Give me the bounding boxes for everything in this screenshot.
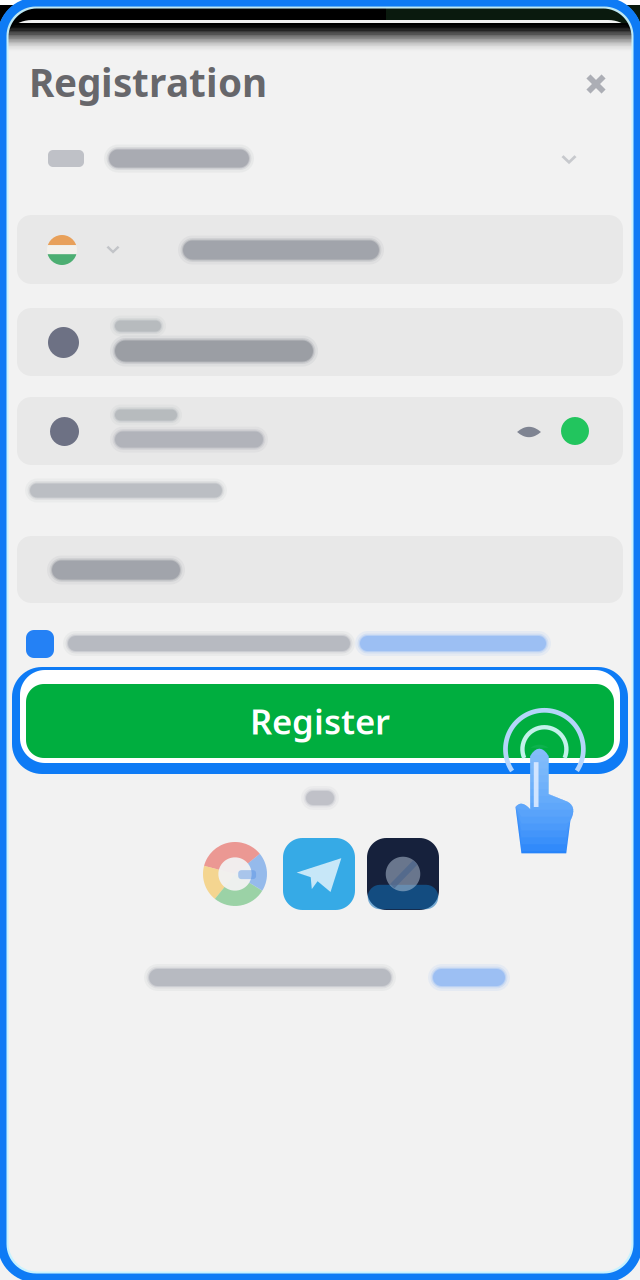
button[interactable]	[0, 0, 640, 1280]
button[interactable]: Sign up with Telegram	[0, 0, 640, 1280]
button[interactable]: Sign up with Steam	[0, 0, 640, 1280]
staticText: Register	[250, 698, 390, 744]
staticText: Registration	[29, 56, 267, 108]
button[interactable]	[0, 0, 640, 1280]
button[interactable]	[0, 0, 640, 1280]
button[interactable]	[0, 0, 640, 1280]
button[interactable]: Close	[0, 0, 640, 1280]
button[interactable]	[0, 0, 640, 1280]
button[interactable]: Sign up with Google	[0, 0, 640, 1280]
button[interactable]: Register	[0, 0, 640, 1280]
button[interactable]	[0, 0, 640, 1280]
button[interactable]	[0, 0, 640, 1280]
